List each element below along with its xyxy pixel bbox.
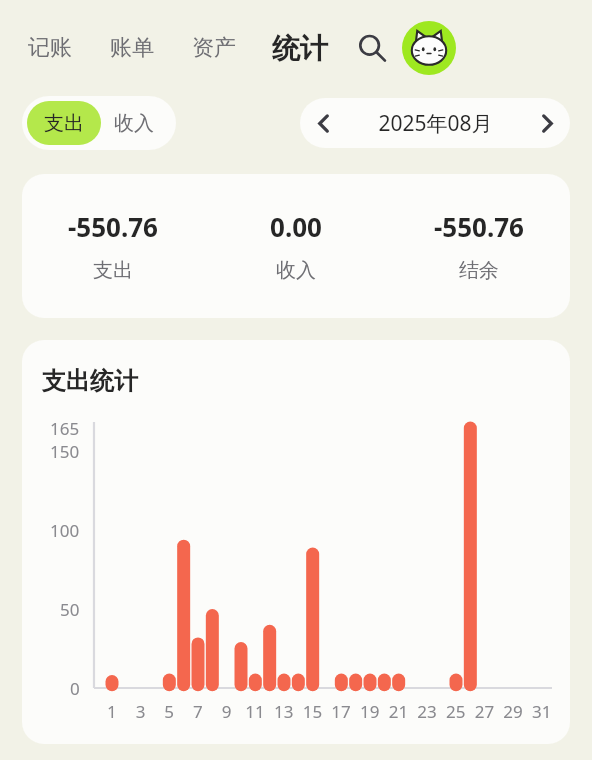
staticText: 账单 — [110, 34, 154, 62]
staticText: -550.76 — [434, 209, 524, 244]
staticText: 收入 — [276, 258, 316, 283]
button[interactable]: Previous month — [300, 98, 570, 148]
button[interactable]: Previous month — [300, 100, 346, 146]
button[interactable]: Profile — [402, 21, 456, 75]
staticText: 支出统计 — [42, 366, 138, 396]
button[interactable]: 支出 — [27, 101, 101, 145]
staticText: 资产 — [192, 34, 236, 62]
button[interactable]: 统计 — [270, 25, 330, 72]
staticText: -550.76 — [68, 209, 158, 244]
button[interactable]: 记账 — [26, 28, 74, 68]
button[interactable]: 收入 — [106, 101, 176, 145]
staticText: 2025年08月 — [378, 109, 493, 138]
staticText: 0.00 — [270, 209, 322, 244]
staticText: 收入 — [114, 111, 154, 136]
button[interactable]: 支出统计 — [22, 340, 570, 744]
staticText: 支出 — [44, 111, 84, 136]
staticText: 统计 — [272, 31, 328, 66]
staticText: 支出 — [93, 258, 133, 283]
button[interactable]: 账单 — [108, 28, 156, 68]
staticText: 记账 — [28, 34, 72, 62]
button[interactable]: -550.76 — [22, 174, 570, 318]
staticText: 结余 — [459, 258, 499, 283]
button[interactable]: Next month — [524, 100, 570, 146]
button[interactable]: Search — [350, 26, 394, 70]
button[interactable]: 资产 — [190, 28, 238, 68]
